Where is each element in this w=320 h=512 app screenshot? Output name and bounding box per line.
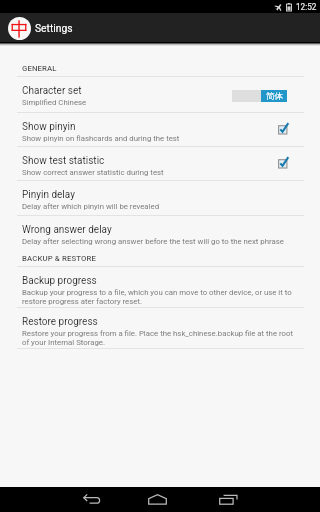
staticText: Backup progress <box>22 275 97 287</box>
staticText: Settings <box>35 22 73 34</box>
button[interactable]: Wrong answer delay <box>0 216 320 250</box>
button[interactable]: Home <box>148 487 167 512</box>
staticText: Show test statistic <box>22 155 105 167</box>
staticText: BACKUP & RESTORE <box>22 254 96 263</box>
button[interactable]: Show test statistic <box>0 147 320 180</box>
button[interactable]: Restore progress <box>0 308 320 348</box>
button[interactable]: Toggle setting <box>278 157 289 169</box>
button[interactable]: Show pinyin <box>0 113 320 146</box>
staticText: Show correct answer statistic during tes… <box>22 168 164 177</box>
button[interactable]: Pinyin delay <box>0 181 320 215</box>
button[interactable]: Backup progress <box>0 267 320 307</box>
staticText: Delay after selecting wrong answer befor… <box>22 237 284 246</box>
button[interactable]: Recents <box>219 487 238 512</box>
staticText: Show pinyin <box>22 121 76 133</box>
staticText: Pinyin delay <box>22 189 75 201</box>
staticText: Wrong answer delay <box>22 224 112 236</box>
staticText: Show pinyin on flashcards and during the… <box>22 134 180 143</box>
staticText: 12:52 <box>296 2 317 12</box>
staticText: GENERAL <box>22 64 57 73</box>
staticText: Restore your progress from a file. Place… <box>22 329 297 347</box>
staticText: Character set <box>22 85 82 97</box>
button[interactable]: Character set toggle <box>232 90 287 102</box>
button[interactable]: Toggle setting <box>278 123 289 135</box>
staticText: 简体 <box>266 91 283 102</box>
staticText: Backup your progress to a file, which yo… <box>22 288 297 306</box>
staticText: Simplified Chinese <box>22 98 87 107</box>
staticText: Delay after which pinyin will be reveale… <box>22 202 160 211</box>
button[interactable]: App icon <box>8 17 31 40</box>
button[interactable]: Back <box>83 487 102 512</box>
staticText: Restore progress <box>22 316 98 328</box>
button[interactable]: Character set <box>0 77 320 112</box>
